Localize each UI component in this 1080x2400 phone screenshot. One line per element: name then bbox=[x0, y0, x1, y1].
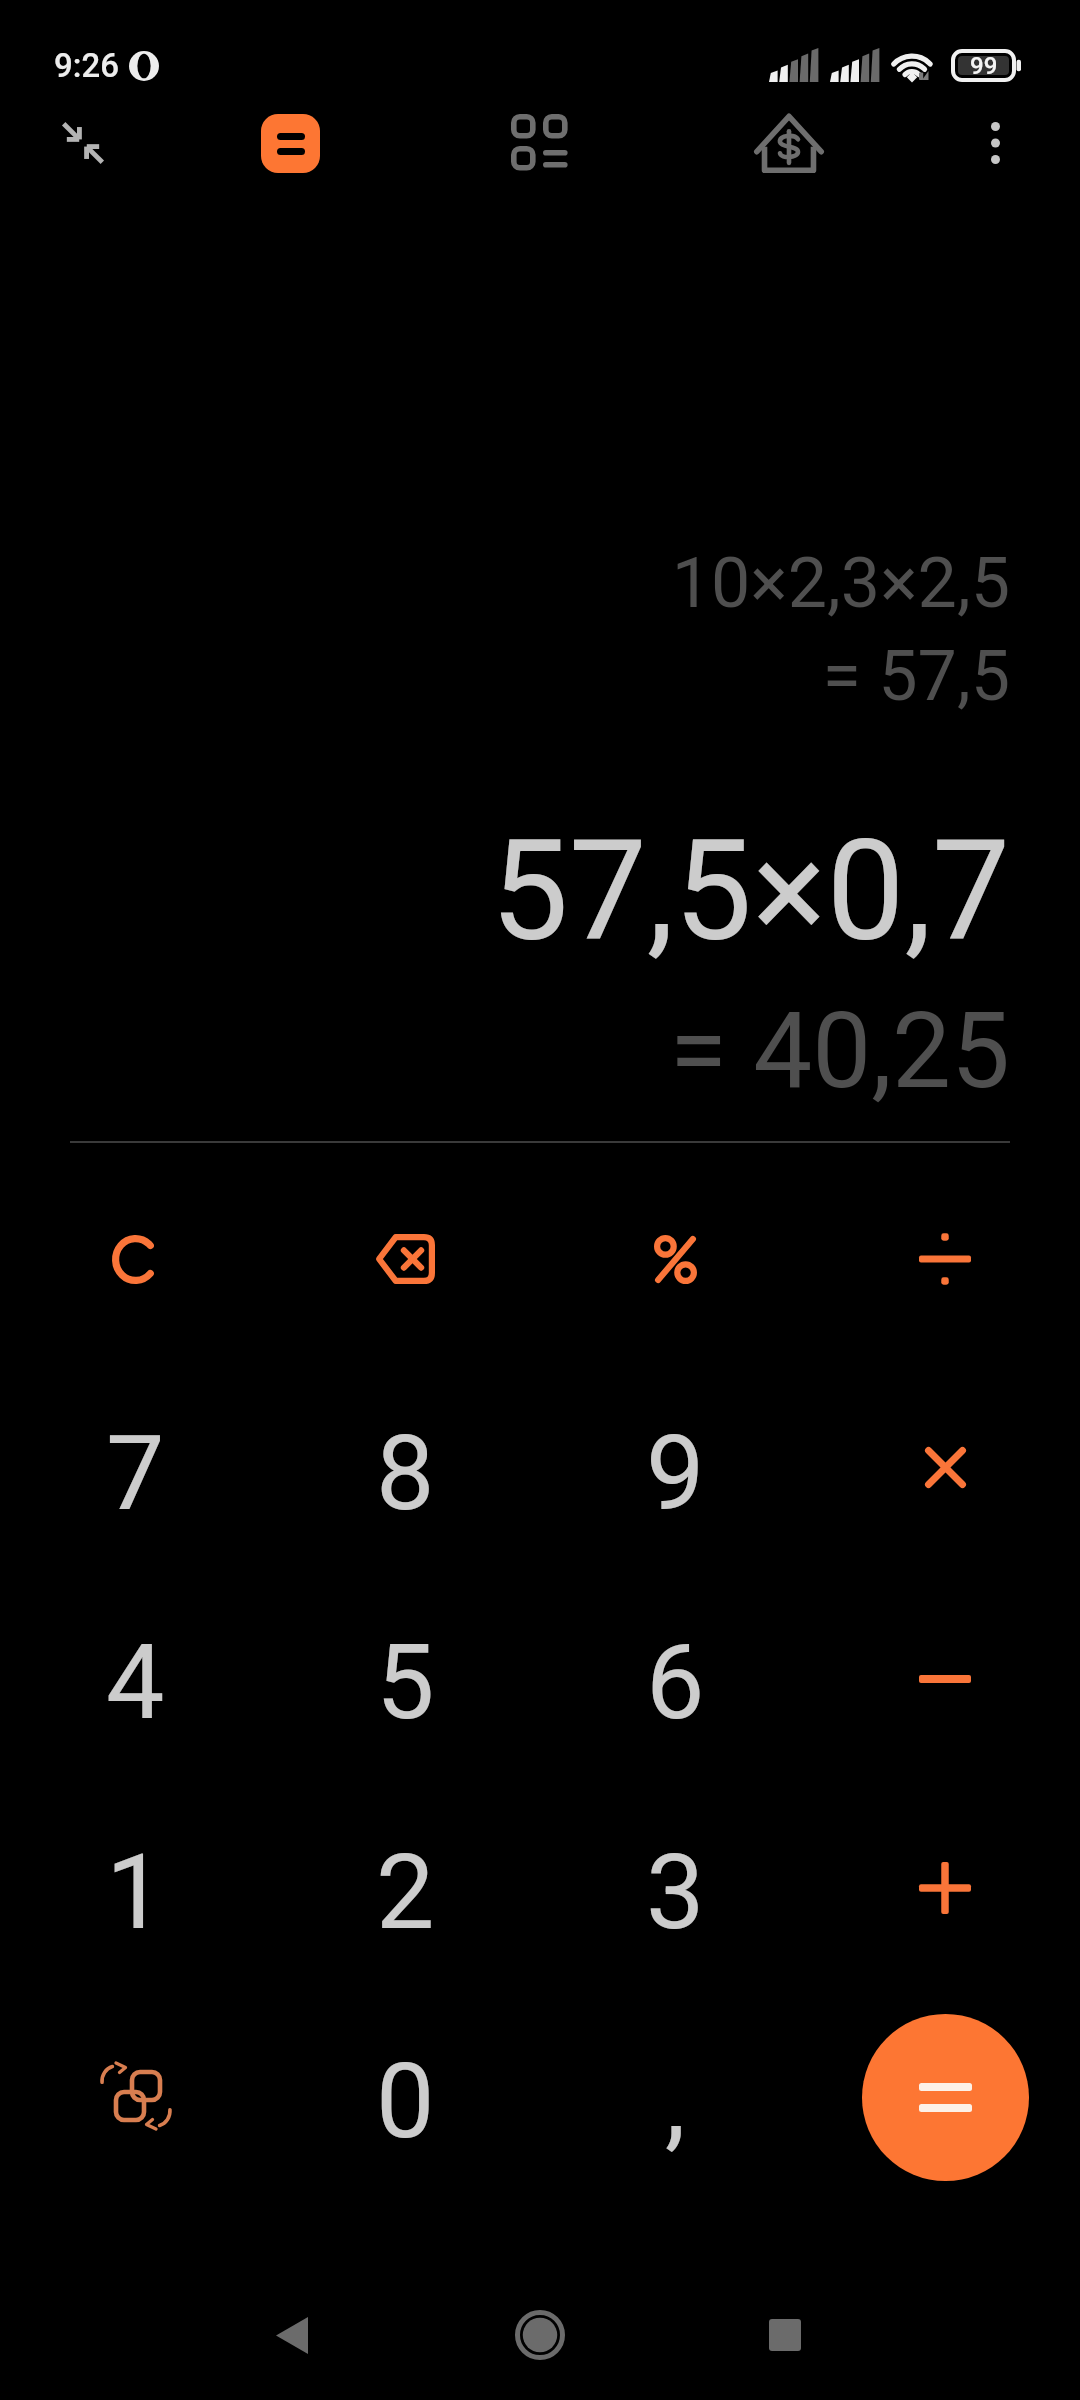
button[interactable]: 3 bbox=[555, 1793, 795, 1993]
staticText: 2 bbox=[376, 1832, 435, 1954]
button[interactable]: Mortgage calculator bbox=[735, 89, 843, 197]
button[interactable]: Recents bbox=[725, 2275, 845, 2395]
staticText: 99 bbox=[970, 52, 998, 80]
staticText: 6 bbox=[646, 1622, 705, 1744]
staticText: = 40,25 bbox=[669, 990, 1010, 1113]
button[interactable]: 5 bbox=[285, 1583, 525, 1783]
button[interactable]: Collapse bbox=[29, 89, 137, 197]
button[interactable]: 7 bbox=[15, 1374, 255, 1574]
staticText: = 57,5 bbox=[822, 635, 1010, 717]
button[interactable]: More options bbox=[941, 89, 1049, 197]
staticText: 1 bbox=[106, 1832, 165, 1954]
button[interactable]: 4 bbox=[15, 1583, 255, 1783]
button[interactable]: 6 bbox=[555, 1583, 795, 1783]
staticText: 7 bbox=[106, 1413, 165, 1535]
staticText: 5 bbox=[376, 1622, 435, 1744]
button[interactable]: Back bbox=[232, 2275, 352, 2395]
staticText: 9 bbox=[646, 1413, 705, 1535]
button[interactable]: Multiply bbox=[825, 1367, 1065, 1567]
staticText: 8 bbox=[376, 1413, 435, 1535]
button[interactable]: 1 bbox=[15, 1793, 255, 1993]
staticText: , bbox=[665, 2041, 686, 2163]
button[interactable]: Clear bbox=[15, 1159, 255, 1359]
staticText: 57,5×0,7 bbox=[490, 810, 1010, 973]
button[interactable]: Minus bbox=[825, 1579, 1065, 1779]
button[interactable]: 0 bbox=[285, 2002, 525, 2202]
button[interactable]: Equals bbox=[825, 1997, 1065, 2197]
button[interactable]: Plus bbox=[825, 1788, 1065, 1988]
staticText: 9:26 bbox=[54, 46, 119, 85]
button[interactable]: , bbox=[555, 2002, 795, 2202]
staticText: 0 bbox=[376, 2041, 435, 2163]
button[interactable]: Percent bbox=[555, 1159, 795, 1359]
button[interactable]: 2 bbox=[285, 1793, 525, 1993]
button[interactable]: Unit converter bbox=[485, 88, 593, 196]
button[interactable]: Home bbox=[480, 2275, 600, 2395]
staticText: 10×2,3×2,5 bbox=[671, 542, 1010, 624]
button[interactable]: Convert bbox=[16, 1996, 256, 2196]
button[interactable]: Backspace bbox=[285, 1159, 525, 1359]
button[interactable]: Calculator bbox=[236, 89, 344, 197]
staticText: 3 bbox=[646, 1832, 705, 1954]
button[interactable]: Divide bbox=[825, 1159, 1065, 1359]
staticText: 4 bbox=[106, 1622, 165, 1744]
button[interactable]: 8 bbox=[285, 1374, 525, 1574]
button[interactable]: 9 bbox=[555, 1374, 795, 1574]
